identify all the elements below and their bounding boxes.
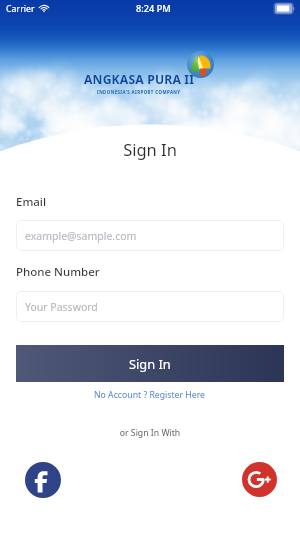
staticText: Phone Number [16,264,100,280]
staticText: ANGKASA PURA II [84,71,195,88]
staticText: INDONESIA'S AIRPORT COMPANY [97,89,181,95]
staticText: Carrier [6,3,35,15]
staticText: example@sample.com [25,229,137,243]
staticText: 8:24 PM [136,2,171,15]
staticText: Sign In [129,355,171,372]
button[interactable]: Sign In [16,345,284,382]
staticText: or Sign In With [0,427,300,439]
button[interactable]: No Account ? Register Here [86,385,214,405]
staticText: Email [16,194,47,210]
button[interactable]: example@sample.com [16,220,284,251]
staticText: Your Password [25,300,98,314]
button[interactable]: Sign in with Google Plus [242,462,277,497]
button[interactable]: Sign in with Facebook [25,462,61,498]
button[interactable]: Your Password [16,291,284,322]
staticText: Sign In [0,138,300,160]
